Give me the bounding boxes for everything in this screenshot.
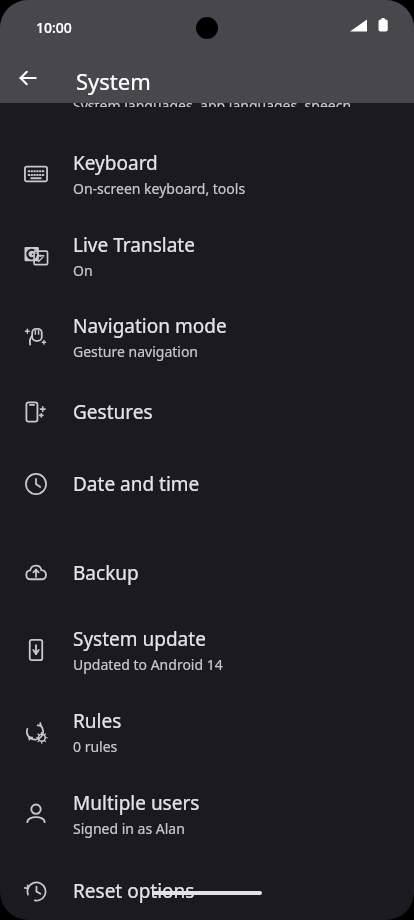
staticText: Live Translate xyxy=(73,232,195,258)
button[interactable]: System update xyxy=(0,620,414,680)
staticText: 0 rules xyxy=(73,737,118,756)
staticText: Navigation mode xyxy=(73,313,227,339)
staticText: Updated to Android 14 xyxy=(73,655,223,674)
staticText: On xyxy=(73,261,93,280)
staticText: Date and time xyxy=(73,471,200,497)
staticText: On-screen keyboard, tools xyxy=(73,179,246,198)
staticText: Backup xyxy=(73,560,139,586)
button[interactable]: System languages, app languages, speech xyxy=(0,103,414,114)
button[interactable]: Gestures xyxy=(0,388,414,436)
staticText: Gesture navigation xyxy=(73,342,199,361)
staticText: System languages, app languages, speech xyxy=(73,96,352,107)
button[interactable]: Back xyxy=(4,54,52,102)
button[interactable]: Backup xyxy=(0,549,414,597)
button[interactable]: Keyboard xyxy=(0,144,414,204)
staticText: Keyboard xyxy=(73,150,158,176)
button[interactable]: Rules xyxy=(0,702,414,762)
staticText: Gestures xyxy=(73,399,153,425)
staticText: Signed in as Alan xyxy=(73,819,185,838)
button[interactable]: Multiple users xyxy=(0,784,414,844)
staticText: Multiple users xyxy=(73,790,200,816)
button[interactable]: Reset options xyxy=(0,867,414,915)
staticText: System update xyxy=(73,626,206,652)
button[interactable]: Date and time xyxy=(0,460,414,508)
button[interactable]: Live Translate xyxy=(0,226,414,286)
button[interactable]: Navigation mode xyxy=(0,307,414,367)
staticText: System xyxy=(76,66,151,96)
staticText: 10:00 xyxy=(36,18,72,37)
staticText: Rules xyxy=(73,708,122,734)
staticText: Reset options xyxy=(73,878,195,904)
